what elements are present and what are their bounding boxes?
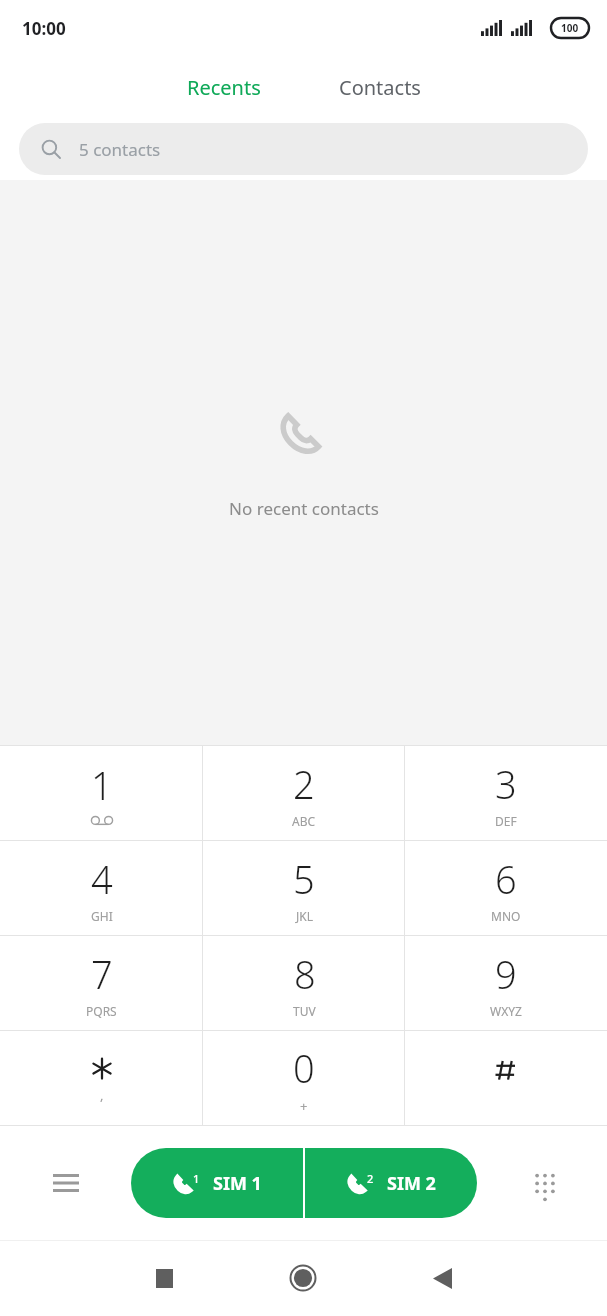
button[interactable]: 8 bbox=[203, 936, 405, 1030]
staticText: TUV bbox=[293, 1003, 316, 1019]
button[interactable]: , bbox=[0, 1031, 203, 1125]
staticText: Contacts bbox=[339, 74, 421, 101]
staticText: 6 bbox=[495, 853, 517, 905]
staticText: MNO bbox=[491, 908, 521, 924]
staticText: 10:00 bbox=[22, 17, 66, 40]
staticText: + bbox=[300, 1097, 308, 1115]
staticText: 7 bbox=[91, 948, 113, 1000]
button[interactable] bbox=[405, 1031, 607, 1125]
button[interactable]: Back bbox=[418, 1254, 466, 1302]
staticText: No recent contacts bbox=[229, 497, 379, 520]
staticText: 4 bbox=[91, 853, 113, 905]
button[interactable]: Home bbox=[279, 1254, 327, 1302]
staticText: DEF bbox=[495, 813, 517, 829]
button[interactable]: 2 bbox=[305, 1148, 477, 1218]
staticText: WXYZ bbox=[490, 1003, 522, 1019]
staticText: 1 bbox=[91, 759, 113, 811]
button[interactable]: 0 bbox=[203, 1031, 405, 1125]
button[interactable]: 5 contacts bbox=[19, 123, 588, 175]
staticText: 8 bbox=[294, 948, 316, 1000]
button[interactable]: 7 bbox=[0, 936, 203, 1030]
staticText: 5 contacts bbox=[79, 138, 161, 161]
button[interactable]: Recent apps bbox=[140, 1254, 188, 1302]
staticText: 100 bbox=[561, 21, 579, 35]
button[interactable]: Contacts bbox=[323, 68, 437, 107]
button[interactable]: 6 bbox=[405, 841, 607, 935]
staticText: Recents bbox=[187, 74, 261, 101]
button[interactable]: Recents bbox=[171, 68, 277, 107]
staticText: 0 bbox=[293, 1042, 315, 1094]
button[interactable]: 2 bbox=[203, 746, 405, 840]
staticText: SIM 2 bbox=[387, 1171, 436, 1196]
staticText: 3 bbox=[495, 758, 517, 810]
button[interactable]: 9 bbox=[405, 936, 607, 1030]
staticText: GHI bbox=[91, 908, 113, 924]
button[interactable]: Menu bbox=[44, 1161, 88, 1205]
staticText: ABC bbox=[292, 813, 316, 829]
button[interactable]: 4 bbox=[0, 841, 203, 935]
staticText: 2 bbox=[367, 1171, 374, 1186]
staticText: 9 bbox=[495, 948, 517, 1000]
button[interactable]: 5 bbox=[203, 841, 405, 935]
staticText: 5 bbox=[293, 853, 315, 905]
staticText: 2 bbox=[293, 758, 315, 810]
staticText: , bbox=[100, 1086, 104, 1104]
button[interactable]: 3 bbox=[405, 746, 607, 840]
button[interactable]: Dialpad bbox=[523, 1161, 567, 1205]
staticText: SIM 1 bbox=[213, 1171, 262, 1196]
button[interactable]: 1 bbox=[0, 746, 203, 840]
button[interactable]: 1 bbox=[131, 1148, 303, 1218]
staticText: 1 bbox=[193, 1171, 200, 1186]
staticText: PQRS bbox=[86, 1003, 117, 1019]
staticText: JKL bbox=[296, 908, 313, 924]
